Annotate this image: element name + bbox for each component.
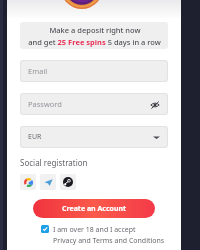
button[interactable]: Show password xyxy=(149,99,160,110)
staticText: EUR xyxy=(28,132,42,142)
staticText: Privacy and Terms and Conditions xyxy=(53,236,165,246)
staticText: Email xyxy=(28,66,48,76)
button[interactable]: EUR xyxy=(20,126,168,148)
button[interactable]: Create an Account xyxy=(33,199,155,218)
button[interactable]: Sign in with Steam xyxy=(60,174,76,190)
button[interactable]: Email xyxy=(20,60,168,82)
staticText: I am over 18 and I accept xyxy=(53,225,136,235)
button[interactable]: Sign in with Google xyxy=(20,174,36,190)
button[interactable]: I am over 18 and I accept xyxy=(41,225,165,246)
staticText: Social registration xyxy=(20,157,88,168)
staticText: Create an Account xyxy=(62,204,127,214)
staticText: and get 25 Free spins 5 days in a row xyxy=(28,37,161,47)
staticText: Make a deposit right now xyxy=(49,25,141,35)
staticText: Password xyxy=(28,99,62,109)
button[interactable]: Sign in with Telegram xyxy=(40,174,56,190)
button[interactable]: Password xyxy=(20,93,168,115)
